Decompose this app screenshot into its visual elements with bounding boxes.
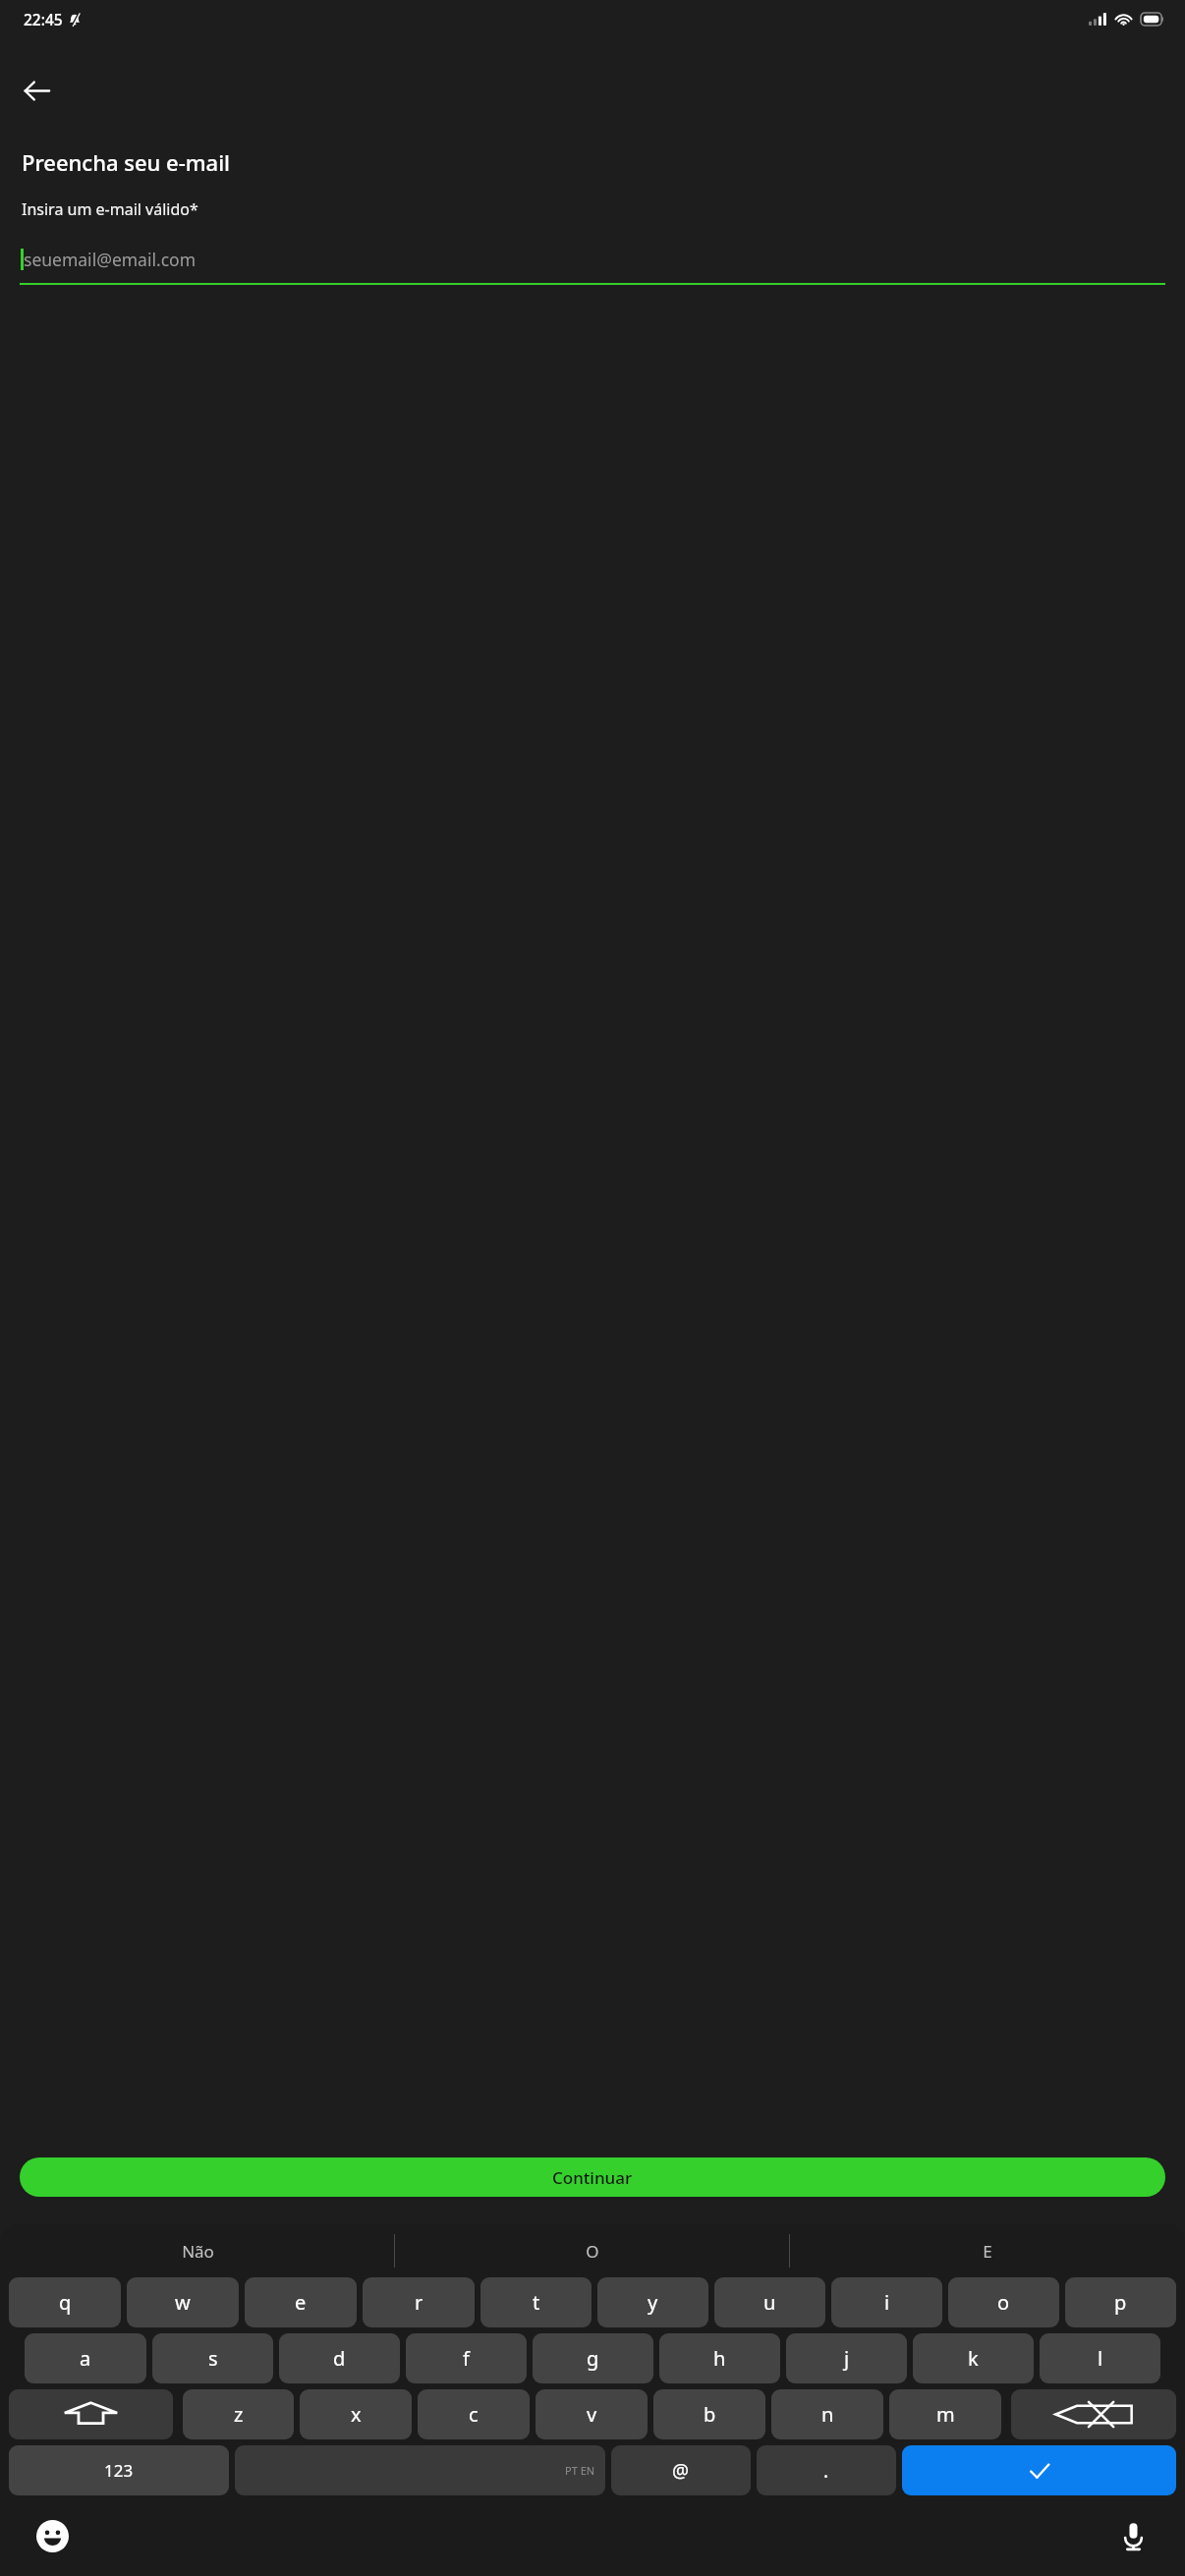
staticText: y [648, 2289, 658, 2316]
button[interactable]: v [536, 2389, 648, 2439]
button[interactable]: a [25, 2333, 146, 2383]
staticText: w [175, 2289, 191, 2316]
button[interactable]: d [279, 2333, 400, 2383]
button[interactable]: r [363, 2277, 475, 2327]
button[interactable]: . [757, 2445, 896, 2495]
button[interactable]: s [152, 2333, 273, 2383]
staticText: v [587, 2401, 597, 2428]
button[interactable]: h [659, 2333, 780, 2383]
button[interactable]: 123 [9, 2445, 229, 2495]
staticText: t [533, 2289, 540, 2316]
button[interactable]: k [913, 2333, 1034, 2383]
staticText: @ [672, 2458, 690, 2484]
staticText: o [997, 2289, 1010, 2316]
button[interactable]: q [9, 2277, 121, 2327]
button[interactable]: l [1040, 2333, 1160, 2383]
staticText: i [884, 2289, 890, 2316]
button[interactable]: Continuar [20, 2157, 1165, 2197]
staticText: e [295, 2289, 307, 2316]
button[interactable]: n [771, 2389, 883, 2439]
staticText: r [415, 2289, 423, 2316]
staticText: j [844, 2345, 850, 2372]
button[interactable]: t [480, 2277, 592, 2327]
button[interactable]: w [127, 2277, 239, 2327]
button[interactable]: E [790, 2224, 1185, 2277]
staticText: Continuar [552, 2166, 633, 2189]
staticText: 123 [104, 2459, 134, 2482]
button[interactable]: Voice input [1110, 2513, 1156, 2558]
button[interactable]: Não [0, 2224, 395, 2277]
staticText: seuemail@email.com [24, 248, 196, 271]
staticText: c [469, 2401, 479, 2428]
button[interactable]: b [653, 2389, 765, 2439]
staticText: p [1114, 2289, 1127, 2316]
staticText: u [763, 2289, 776, 2316]
button[interactable]: seuemail@email.com [20, 236, 1165, 283]
staticText: s [208, 2345, 218, 2372]
staticText: m [936, 2401, 955, 2428]
button[interactable]: Back [10, 64, 63, 117]
staticText: PT EN [565, 2463, 595, 2478]
button[interactable]: Backspace [1011, 2389, 1176, 2439]
staticText: f [463, 2345, 470, 2372]
button[interactable]: j [786, 2333, 907, 2383]
button[interactable]: e [245, 2277, 357, 2327]
staticText: Não [182, 2240, 214, 2263]
button[interactable]: Emoji [29, 2513, 75, 2558]
staticText: b [704, 2401, 716, 2428]
staticText: l [1098, 2345, 1103, 2372]
button[interactable]: i [831, 2277, 942, 2327]
button[interactable]: x [300, 2389, 412, 2439]
button[interactable]: g [533, 2333, 653, 2383]
button[interactable]: f [406, 2333, 527, 2383]
button[interactable]: Space [235, 2445, 605, 2495]
button[interactable]: u [714, 2277, 825, 2327]
button[interactable]: c [418, 2389, 530, 2439]
staticText: n [821, 2401, 834, 2428]
button[interactable]: y [597, 2277, 708, 2327]
staticText: z [234, 2401, 244, 2428]
staticText: O [586, 2240, 599, 2263]
button[interactable]: O [395, 2224, 790, 2277]
staticText: d [333, 2345, 346, 2372]
staticText: E [983, 2240, 992, 2263]
staticText: k [968, 2345, 979, 2372]
staticText: Preencha seu e-mail [22, 147, 231, 177]
button[interactable]: p [1065, 2277, 1176, 2327]
staticText: x [351, 2401, 362, 2428]
button[interactable]: m [889, 2389, 1001, 2439]
staticText: g [587, 2345, 599, 2372]
staticText: Insira um e-mail válido* [22, 198, 198, 220]
staticText: q [59, 2289, 72, 2316]
button[interactable]: Enter [902, 2445, 1176, 2495]
button[interactable]: o [948, 2277, 1059, 2327]
staticText: 22:45 [24, 9, 63, 29]
button[interactable]: Shift [9, 2389, 173, 2439]
staticText: . [823, 2458, 829, 2484]
staticText: a [80, 2345, 91, 2372]
button[interactable]: z [183, 2389, 294, 2439]
button[interactable]: @ [611, 2445, 751, 2495]
staticText: h [713, 2345, 726, 2372]
